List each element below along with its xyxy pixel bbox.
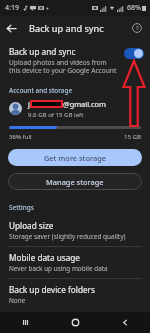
button[interactable]: Home	[50, 312, 100, 333]
staticText: @gmail.com	[63, 99, 106, 109]
staticText: 9.6 GB of 15 GB left	[28, 110, 84, 118]
staticText: Back up device folders	[9, 284, 95, 295]
staticText: ?	[136, 24, 139, 32]
staticText: j	[28, 99, 30, 109]
staticText: 4:19	[5, 3, 19, 13]
staticText: Manage storage	[46, 177, 104, 187]
staticText: Account and storage	[9, 86, 73, 95]
button[interactable]: Upload size	[0, 215, 150, 246]
staticText: Back up and sync	[9, 46, 76, 57]
button[interactable]: Back up and sync toggle	[124, 48, 144, 59]
button[interactable]: Back	[100, 312, 150, 333]
button[interactable]: Mobile data usage	[0, 247, 150, 278]
staticText: None	[9, 296, 26, 305]
staticText: Never back up using mobile data	[9, 264, 108, 273]
staticText: 36% full	[9, 132, 32, 140]
staticText: Back up and sync	[29, 22, 104, 35]
staticText: Upload photos and videos from this devic…	[9, 58, 119, 75]
staticText: Get more storage	[44, 153, 106, 163]
staticText: Upload size	[9, 220, 54, 231]
button[interactable]: Back up and sync	[0, 40, 150, 77]
button[interactable]: Get more storage	[8, 149, 142, 166]
button[interactable]: Back	[2, 19, 21, 38]
button[interactable]: Recents	[0, 312, 50, 333]
button[interactable]: j	[0, 99, 150, 118]
button[interactable]: Manage storage	[8, 173, 142, 190]
button[interactable]: Help	[128, 19, 146, 37]
button[interactable]: Back up device folders	[0, 279, 150, 310]
staticText: 15 GB	[124, 132, 141, 140]
staticText: Mobile data usage	[9, 252, 80, 263]
staticText: Storage saver (slightly reduced quality)	[9, 232, 126, 241]
staticText: 68%	[127, 3, 141, 13]
staticText: Settings	[9, 203, 34, 212]
